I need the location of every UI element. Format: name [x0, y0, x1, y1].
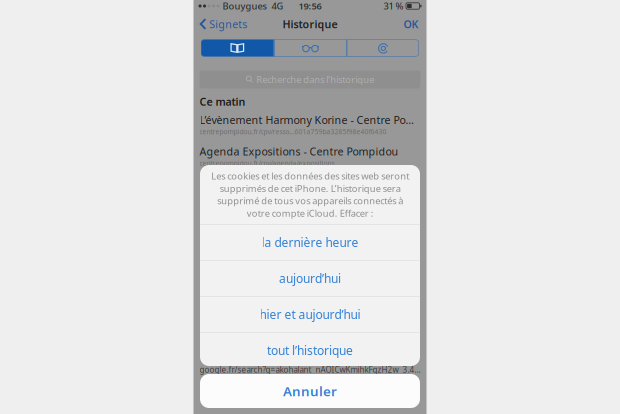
- staticText: centrepompidou.fr/cpv/resso…601a759ba328…: [199, 127, 386, 136]
- staticText: Recherche dans l’historique: [256, 73, 374, 86]
- staticText: Agenda Expositions - Centre Pompidou: [199, 144, 398, 158]
- button[interactable]: tout l’historique: [200, 333, 420, 368]
- staticText: OK: [403, 17, 418, 31]
- staticText: Signets: [209, 17, 247, 31]
- staticText: Bouygues: [223, 0, 268, 12]
- staticText: Historique: [282, 17, 337, 31]
- button[interactable]: Annuler: [200, 374, 420, 408]
- staticText: Les cookies et les données des sites web…: [211, 170, 409, 219]
- button[interactable]: L’évènement Harmony Korine - Centre Po…: [199, 113, 420, 136]
- button[interactable]: la dernière heure: [200, 225, 420, 260]
- staticText: Ce matin: [199, 94, 245, 109]
- button[interactable]: aujourd’hui: [200, 261, 420, 296]
- staticText: 19:56: [298, 0, 321, 12]
- button[interactable]: Liste de lecture: [347, 39, 419, 56]
- button[interactable]: OK: [396, 12, 425, 36]
- button[interactable]: Signets: [194, 12, 252, 36]
- staticText: L’évènement Harmony Korine - Centre Po…: [199, 113, 413, 127]
- button[interactable]: Agenda Expositions - Centre Pompidou: [199, 144, 420, 168]
- button[interactable]: Historique: [275, 39, 346, 56]
- staticText: Annuler: [283, 382, 337, 400]
- button[interactable]: Signets: [201, 39, 274, 56]
- staticText: centrepompidou.fr/cpv/agenda/expositions: [199, 159, 334, 168]
- staticText: aujourd’hui: [279, 270, 341, 286]
- staticText: google.fr/search?q=akohalant_nAOICwKmihk…: [199, 364, 420, 375]
- button[interactable]: hier et aujourd’hui: [200, 297, 420, 332]
- staticText: la dernière heure: [261, 234, 358, 250]
- staticText: 31 %: [383, 0, 403, 12]
- staticText: 4G: [272, 0, 284, 12]
- staticText: hier et aujourd’hui: [259, 306, 360, 322]
- staticText: tout l’historique: [267, 342, 353, 358]
